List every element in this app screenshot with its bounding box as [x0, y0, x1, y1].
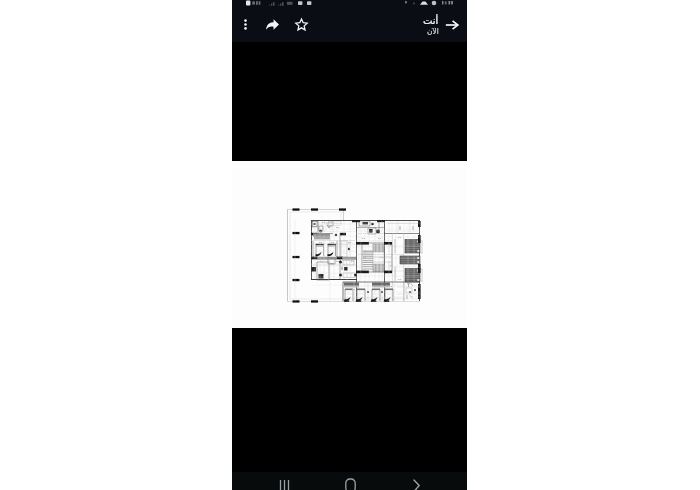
- button[interactable]: Home: [311, 472, 389, 490]
- staticText: أنت: [423, 15, 439, 27]
- button[interactable]: Back: [389, 472, 467, 490]
- button[interactable]: Share: [260, 12, 285, 37]
- staticText: الآن: [427, 27, 439, 36]
- button[interactable]: Favorite: [289, 12, 314, 37]
- button[interactable]: Back: [439, 12, 464, 37]
- button[interactable]: More options: [233, 12, 258, 37]
- button[interactable]: Recents: [232, 472, 311, 490]
